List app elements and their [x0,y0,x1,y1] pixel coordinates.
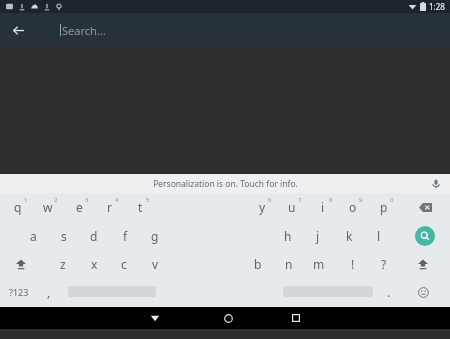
staticText: 8 [329,196,333,204]
button[interactable]: Back [6,18,30,42]
button[interactable]: t [127,194,153,220]
staticText: g [151,228,159,244]
staticText: r [107,199,112,215]
staticText: ?123 [9,286,29,298]
button[interactable]: Back [130,307,180,329]
staticText: ? [381,256,387,272]
button[interactable]: o [340,194,366,220]
button[interactable]: l [366,223,392,249]
button[interactable]: c [111,251,137,277]
staticText: , [47,284,51,300]
button[interactable]: g [142,223,168,249]
button[interactable]: n [276,251,302,277]
button[interactable]: ! [340,251,366,277]
staticText: 5 [146,196,150,204]
button[interactable]: Shift [410,251,436,277]
staticText: n [285,256,293,272]
staticText: 9 [359,196,363,204]
staticText: 2 [54,196,58,204]
button[interactable]: z [50,251,76,277]
staticText: Search... [62,23,106,38]
staticText: 3 [85,196,89,204]
button[interactable]: q [5,194,31,220]
staticText: q [14,199,22,215]
staticText: i [321,199,325,215]
staticText: 4 [115,196,119,204]
staticText: z [60,256,66,272]
button[interactable]: d [81,223,107,249]
staticText: c [121,256,127,272]
button[interactable]: f [112,223,138,249]
button[interactable]: Recents [271,307,321,329]
staticText: 1:28 [429,1,445,12]
button[interactable]: u [279,194,305,220]
button[interactable]: m [306,251,332,277]
staticText: f [123,228,128,244]
button[interactable]: Home [203,307,253,329]
staticText: x [91,256,98,272]
button[interactable]: Emoji [410,279,436,305]
button[interactable]: y [249,194,275,220]
staticText: t [138,199,143,215]
staticText: Personalization is on. Touch for info. [153,178,298,190]
staticText: j [316,228,320,244]
button[interactable]: Backspace [412,194,438,220]
staticText: y [259,199,266,215]
button[interactable]: r [96,194,122,220]
button[interactable]: ?123 [4,279,34,305]
staticText: b [254,256,262,272]
button[interactable]: . [376,279,402,305]
button[interactable]: b [245,251,271,277]
staticText: e [76,199,83,215]
button[interactable]: Search [412,223,438,249]
button[interactable]: h [275,223,301,249]
staticText: h [284,228,292,244]
button[interactable]: Shift [8,251,34,277]
button[interactable]: x [81,251,107,277]
button[interactable]: Search... [60,18,260,42]
button[interactable]: Personalization is on. Touch for info. [0,174,450,193]
button[interactable]: k [336,223,362,249]
button[interactable]: s [51,223,77,249]
staticText: l [377,228,381,244]
button[interactable]: Voice input [428,176,444,192]
staticText: 0 [390,196,394,204]
button[interactable]: e [66,194,92,220]
button[interactable]: w [35,194,61,220]
button[interactable]: j [305,223,331,249]
staticText: a [30,228,37,244]
staticText: p [380,199,388,215]
button[interactable]: v [142,251,168,277]
staticText: o [349,199,357,215]
staticText: k [346,228,353,244]
button[interactable]: p [371,194,397,220]
staticText: ! [351,256,355,272]
staticText: m [313,256,325,272]
staticText: v [152,256,159,272]
staticText: 1 [24,196,28,204]
button[interactable]: , [36,279,62,305]
staticText: . [387,284,391,300]
staticText: w [43,199,53,215]
staticText: 6 [268,196,272,204]
staticText: 7 [298,196,302,204]
button[interactable]: i [310,194,336,220]
button[interactable]: a [20,223,46,249]
button[interactable]: ? [371,251,397,277]
staticText: s [61,228,67,244]
staticText: u [288,199,296,215]
staticText: d [90,228,98,244]
